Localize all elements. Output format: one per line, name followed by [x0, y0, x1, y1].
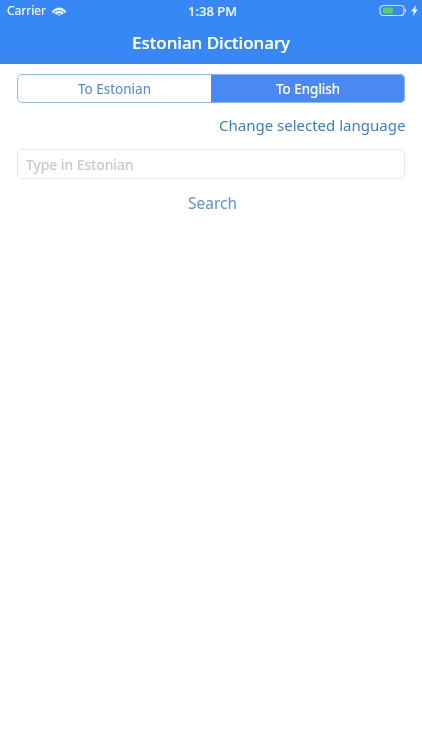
staticText: To English	[276, 80, 341, 98]
button[interactable]: To English	[211, 74, 405, 103]
other: Battery	[380, 5, 406, 16]
other: Charging	[411, 5, 418, 16]
staticText: Type in Estonian	[26, 155, 134, 174]
staticText: Carrier	[7, 2, 47, 18]
button[interactable]: Type in Estonian	[17, 149, 405, 179]
staticText: 1:38 PM	[188, 2, 238, 20]
button[interactable]: Search	[168, 190, 258, 215]
staticText: To Estonian	[78, 80, 151, 98]
staticText: Change selected language	[219, 115, 406, 135]
button[interactable]: Change selected language	[211, 111, 422, 135]
staticText: Search	[188, 192, 238, 213]
button[interactable]: To Estonian	[17, 74, 211, 103]
other: Wi-Fi signal	[51, 5, 67, 16]
staticText: Estonian Dictionary	[132, 31, 291, 54]
